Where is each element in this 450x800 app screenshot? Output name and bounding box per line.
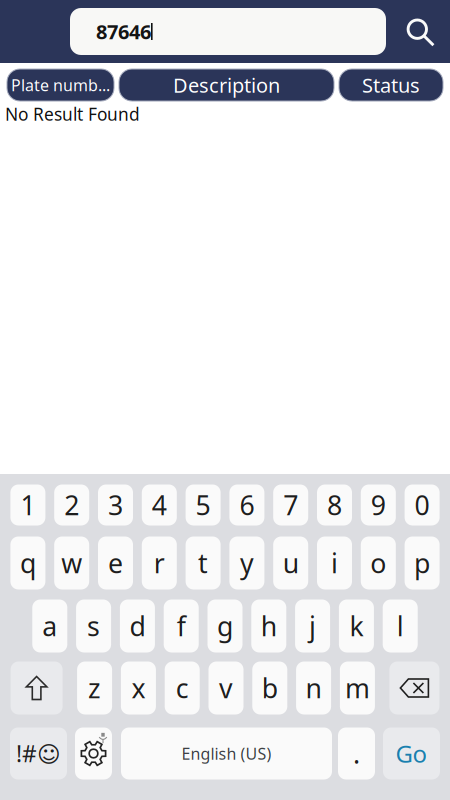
staticText: q: [20, 545, 36, 581]
button[interactable]: Search: [386, 8, 450, 55]
staticText: f: [177, 608, 186, 644]
staticText: Status: [362, 72, 420, 98]
button[interactable]: Settings: [75, 727, 112, 779]
button[interactable]: Shift: [11, 661, 63, 714]
button[interactable]: English (US): [121, 727, 332, 779]
button[interactable]: 3: [98, 484, 133, 525]
button[interactable]: o: [361, 536, 396, 589]
staticText: 8: [327, 487, 342, 523]
button[interactable]: m: [340, 661, 375, 714]
staticText: m: [345, 670, 370, 706]
button[interactable]: !#☺: [10, 727, 67, 779]
staticText: No Result Found: [5, 102, 140, 125]
button[interactable]: x: [121, 661, 156, 714]
staticText: k: [349, 608, 363, 644]
staticText: Description: [173, 72, 280, 98]
button[interactable]: 8: [317, 484, 352, 525]
button[interactable]: 2: [54, 484, 89, 525]
staticText: u: [283, 545, 299, 581]
button[interactable]: s: [76, 599, 111, 652]
staticText: 5: [196, 487, 211, 523]
staticText: o: [370, 545, 386, 581]
button[interactable]: 0: [405, 484, 440, 525]
staticText: 0: [415, 487, 430, 523]
staticText: g: [217, 608, 233, 644]
staticText: w: [61, 545, 82, 581]
staticText: a: [42, 608, 57, 644]
staticText: 3: [108, 487, 123, 523]
staticText: i: [331, 545, 338, 581]
button[interactable]: Backspace: [389, 661, 439, 714]
staticText: !#☺: [16, 738, 61, 768]
staticText: d: [129, 608, 145, 644]
staticText: j: [309, 608, 316, 644]
button[interactable]: 5: [186, 484, 221, 525]
staticText: 2: [64, 487, 79, 523]
staticText: p: [414, 545, 430, 581]
staticText: y: [240, 545, 254, 581]
button[interactable]: a: [32, 599, 67, 652]
button[interactable]: 1: [10, 484, 45, 525]
staticText: s: [87, 608, 100, 644]
staticText: n: [306, 670, 322, 706]
staticText: r: [154, 545, 165, 581]
button[interactable]: h: [251, 599, 286, 652]
button[interactable]: b: [252, 661, 287, 714]
button[interactable]: 9: [361, 484, 396, 525]
button[interactable]: t: [186, 536, 221, 589]
button[interactable]: q: [10, 536, 45, 589]
staticText: 1: [20, 487, 35, 523]
button[interactable]: k: [339, 599, 374, 652]
button[interactable]: n: [296, 661, 331, 714]
staticText: e: [108, 545, 123, 581]
button[interactable]: u: [273, 536, 308, 589]
staticText: b: [262, 670, 278, 706]
staticText: 9: [371, 487, 386, 523]
button[interactable]: d: [120, 599, 155, 652]
button[interactable]: g: [207, 599, 242, 652]
button[interactable]: l: [383, 599, 418, 652]
button[interactable]: f: [164, 599, 199, 652]
button[interactable]: z: [77, 661, 112, 714]
button[interactable]: Go: [383, 727, 440, 779]
button[interactable]: 6: [229, 484, 264, 525]
button[interactable]: y: [229, 536, 264, 589]
staticText: Plate numb...: [11, 74, 110, 96]
staticText: v: [219, 670, 233, 706]
staticText: 87646: [96, 18, 151, 45]
staticText: t: [198, 545, 208, 581]
staticText: English (US): [181, 743, 271, 764]
staticText: c: [176, 670, 189, 706]
button[interactable]: Status: [339, 69, 443, 101]
staticText: 7: [283, 487, 298, 523]
button[interactable]: Description: [119, 69, 334, 101]
staticText: h: [261, 608, 277, 644]
button[interactable]: p: [405, 536, 440, 589]
button[interactable]: v: [208, 661, 243, 714]
button[interactable]: e: [98, 536, 133, 589]
button[interactable]: w: [54, 536, 89, 589]
button[interactable]: 7: [273, 484, 308, 525]
staticText: .: [353, 736, 360, 771]
button[interactable]: .: [338, 727, 375, 779]
button[interactable]: i: [317, 536, 352, 589]
button[interactable]: c: [165, 661, 200, 714]
staticText: x: [131, 670, 145, 706]
staticText: z: [88, 670, 101, 706]
button[interactable]: r: [142, 536, 177, 589]
button[interactable]: Plate numb...: [7, 69, 114, 101]
staticText: 4: [152, 487, 167, 523]
staticText: 6: [239, 487, 254, 523]
button[interactable]: 4: [142, 484, 177, 525]
staticText: l: [397, 608, 404, 644]
staticText: Go: [395, 738, 427, 769]
button[interactable]: j: [295, 599, 330, 652]
